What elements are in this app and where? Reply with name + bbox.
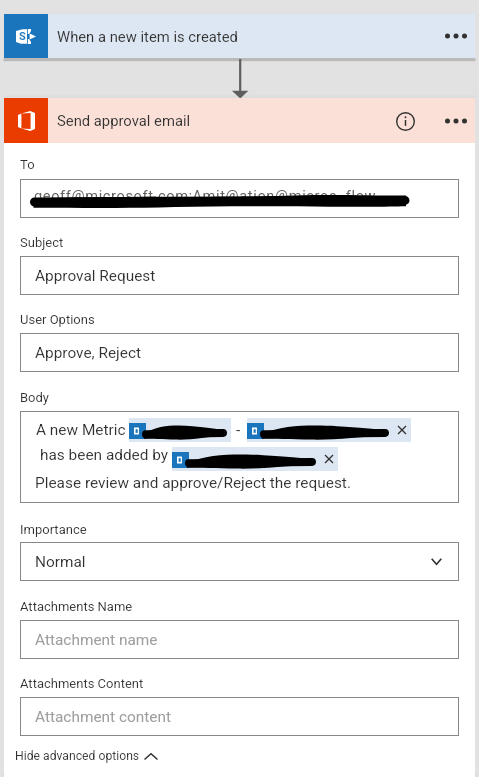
button[interactable]: Approve, Reject xyxy=(20,333,459,372)
button[interactable]: Normal xyxy=(20,542,459,581)
button[interactable]: Office 365 Outlook xyxy=(4,98,475,143)
staticText: Attachments Name xyxy=(20,599,133,614)
staticText: - xyxy=(236,421,241,439)
staticText: has been added by xyxy=(40,446,169,464)
button[interactable]: More options xyxy=(438,104,474,138)
button[interactable]: Dynamic content token xyxy=(247,418,411,442)
button[interactable]: Attachment name xyxy=(20,620,459,659)
button[interactable]: Dynamic content token xyxy=(172,447,338,471)
staticText: Normal xyxy=(35,553,86,571)
staticText: Approval Request xyxy=(35,267,156,285)
button[interactable]: Information xyxy=(391,107,419,135)
staticText: Body xyxy=(20,390,49,405)
staticText: Attachment name xyxy=(35,631,158,649)
button[interactable]: Approval Request xyxy=(20,256,459,295)
staticText: Subject xyxy=(20,235,64,250)
other: SharePoint xyxy=(16,29,36,44)
staticText: geoff@microsoft.com;Amit@ation@micros. f… xyxy=(34,187,377,204)
button[interactable]: Dynamic content token xyxy=(129,418,231,442)
button[interactable]: A new Metric xyxy=(20,411,459,503)
staticText: When a new item is created xyxy=(57,28,238,45)
staticText: Attachment content xyxy=(35,708,171,726)
staticText: To xyxy=(20,157,35,172)
staticText: Attachments Content xyxy=(20,676,144,691)
staticText: Please review and approve/Reject the req… xyxy=(35,474,351,492)
button[interactable]: Attachment content xyxy=(20,697,459,736)
other: Office 365 Outlook xyxy=(18,111,35,131)
staticText: A new Metric xyxy=(36,421,126,439)
staticText: S xyxy=(19,30,26,43)
button[interactable]: More options xyxy=(438,19,474,53)
staticText: Send approval email xyxy=(57,112,191,129)
staticText: Importance xyxy=(20,522,87,537)
button[interactable]: Hide advanced options xyxy=(11,746,162,766)
staticText: Hide advanced options xyxy=(15,749,140,763)
button[interactable]: geoff@microsoft.com;Amit@ation@micros. f… xyxy=(20,179,459,218)
button[interactable]: SharePoint xyxy=(4,14,475,58)
staticText: Approve, Reject xyxy=(35,344,141,362)
staticText: User Options xyxy=(20,312,95,327)
